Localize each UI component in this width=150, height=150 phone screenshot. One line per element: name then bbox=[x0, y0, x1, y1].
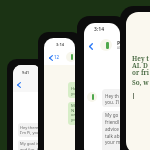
staticText: and fun. A bbox=[20, 147, 40, 150]
button[interactable]: My goal is bbox=[18, 140, 41, 150]
staticText: you. I'l bbox=[105, 99, 120, 105]
other: Pi avatar bbox=[87, 92, 97, 102]
staticText: My go bbox=[105, 112, 119, 118]
staticText: friendl bbox=[105, 119, 120, 125]
staticText: He bbox=[71, 86, 75, 92]
staticText: So, w bbox=[132, 78, 149, 87]
staticText: or bbox=[71, 112, 75, 118]
staticText: Hey th bbox=[105, 93, 119, 99]
button[interactable]: Hey th bbox=[102, 89, 120, 107]
staticText: AI. D bbox=[132, 61, 148, 70]
staticText: 3:14 bbox=[56, 42, 64, 47]
staticText: yo bbox=[71, 91, 75, 97]
staticText: Pi bbox=[117, 40, 120, 47]
button[interactable]: M bbox=[68, 102, 75, 125]
button[interactable]: Back bbox=[89, 43, 93, 50]
staticText: yc bbox=[71, 117, 75, 123]
staticText: My goal is bbox=[20, 141, 39, 146]
staticText: or fri bbox=[132, 68, 150, 77]
staticText: talk ab bbox=[105, 133, 120, 139]
staticText: I'm Pi, you bbox=[20, 130, 40, 135]
staticText: Hey there, bbox=[20, 125, 40, 130]
staticText: M bbox=[71, 103, 75, 109]
staticText: 9:41 bbox=[22, 70, 30, 75]
button[interactable]: Hey there, bbox=[18, 123, 41, 137]
button[interactable]: Back bbox=[17, 82, 21, 88]
staticText: N bbox=[71, 108, 75, 114]
staticText: your m bbox=[105, 139, 120, 145]
other: Pi avatar bbox=[100, 39, 112, 51]
button[interactable]: Back bbox=[49, 55, 53, 61]
staticText: 3:14 bbox=[94, 26, 104, 33]
staticText: advice bbox=[105, 126, 119, 132]
other: Pi avatar bbox=[66, 52, 75, 62]
staticText: AI bbox=[117, 46, 120, 50]
button[interactable]: He bbox=[68, 82, 75, 98]
button[interactable]: My go bbox=[102, 111, 120, 150]
staticText: Hey t bbox=[132, 54, 149, 63]
staticText: 12 bbox=[54, 54, 60, 60]
